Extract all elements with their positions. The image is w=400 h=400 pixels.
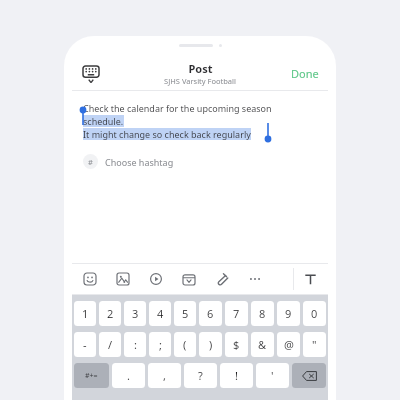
staticText: #+= [85,371,98,381]
button[interactable]: 3 [124,301,146,326]
button[interactable]: Emoji [80,269,100,289]
staticText: , [163,368,166,383]
staticText: @ [284,337,294,352]
button[interactable]: $ [225,332,248,357]
staticText: ( [183,337,187,352]
button[interactable]: , [148,363,181,388]
button[interactable]: ' [256,363,289,388]
button[interactable]: ? [184,363,217,388]
staticText: Done [291,66,319,81]
button[interactable]: # [83,154,174,169]
staticText: : [134,337,137,352]
button[interactable]: Done [282,60,328,87]
button[interactable]: ; [149,332,171,357]
button[interactable]: 7 [225,301,248,326]
button[interactable]: ) [199,332,222,357]
staticText: It might change so check back regularly [83,128,251,140]
staticText: ; [159,337,162,352]
staticText: # [88,157,93,167]
staticText: ! [235,368,238,383]
button[interactable]: #+= [74,363,109,388]
staticText: 9 [285,306,292,321]
staticText: Choose hashtag [105,156,174,168]
staticText: 8 [259,306,266,321]
staticText: 5 [182,306,189,321]
staticText: schedule. [83,115,124,127]
button[interactable]: 8 [251,301,274,326]
button[interactable]: 4 [149,301,171,326]
button[interactable]: ! [220,363,253,388]
staticText: 0 [311,306,318,321]
button[interactable]: / [99,332,121,357]
staticText: Post [188,61,213,76]
staticText: 4 [157,306,164,321]
button[interactable]: Poll [179,269,199,289]
button[interactable]: Video [146,269,166,289]
button[interactable]: Hide keyboard [78,61,104,87]
staticText: " [312,337,317,352]
staticText: 2 [107,306,114,321]
button[interactable]: . [112,363,145,388]
staticText: 6 [207,306,214,321]
button[interactable]: @ [277,332,300,357]
button[interactable]: " [303,332,326,357]
button[interactable]: ( [174,332,196,357]
staticText: $ [233,337,240,352]
staticText: / [108,337,113,352]
button[interactable]: 0 [303,301,326,326]
button[interactable]: 2 [99,301,121,326]
staticText: ? [198,368,203,383]
button[interactable]: 9 [277,301,300,326]
staticText: Check the calendar for the upcoming seas… [83,102,272,114]
staticText: SJHS Varsity Football [164,76,236,86]
button[interactable]: - [74,332,96,357]
button[interactable]: Image [113,269,133,289]
button[interactable]: More options [245,269,265,289]
button[interactable]: 5 [174,301,196,326]
staticText: & [258,337,267,352]
staticText: 7 [233,306,240,321]
button[interactable]: & [251,332,274,357]
button[interactable]: : [124,332,146,357]
staticText: - [83,337,87,352]
button[interactable]: Backspace [292,363,326,388]
button[interactable]: Attach file [212,269,232,289]
button[interactable]: 6 [199,301,222,326]
staticText: . [127,368,130,383]
button[interactable]: 1 [74,301,96,326]
staticText: ) [209,337,213,352]
staticText: 3 [132,306,139,321]
staticText: ' [271,368,274,383]
staticText: 1 [82,306,89,321]
button[interactable]: Text formatting [300,269,320,289]
